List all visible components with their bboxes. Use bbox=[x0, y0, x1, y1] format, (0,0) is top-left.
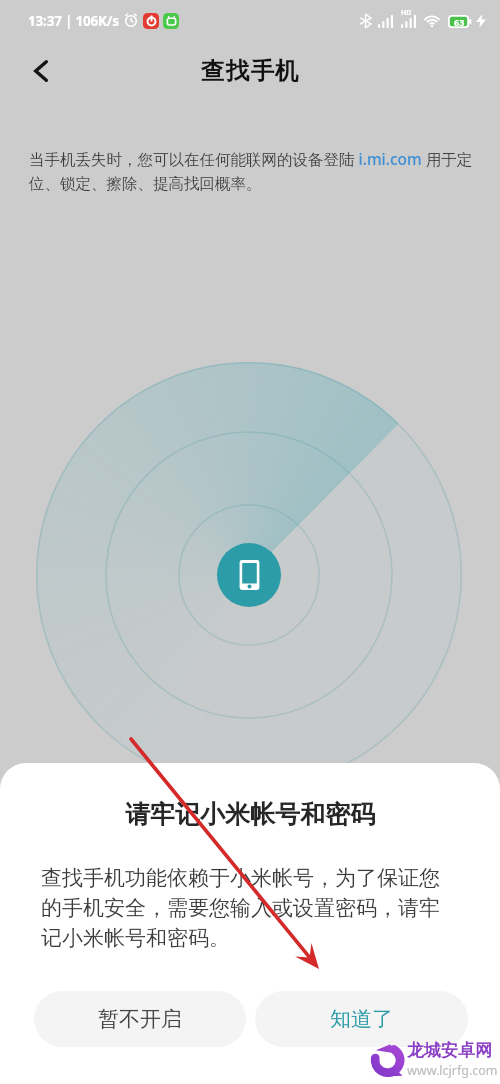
staticText: 当手机丢失时，您可以在任何能联网的设备登陆 i.mi.com 用于定位、锁定、擦… bbox=[29, 148, 482, 194]
button[interactable]: 知道了 bbox=[255, 991, 468, 1047]
staticText: 查找手机功能依赖于小米帐号，为了保证您的手机安全，需要您输入或设置密码，请牢记小… bbox=[41, 865, 450, 951]
staticText: HD bbox=[401, 8, 412, 18]
staticText: 63 bbox=[454, 16, 465, 28]
staticText: 知道了 bbox=[330, 1006, 393, 1032]
button[interactable]: Back bbox=[18, 48, 64, 94]
staticText: 龙城安卓网 bbox=[407, 1040, 492, 1061]
staticText: 查找手机 bbox=[201, 56, 300, 86]
staticText: 请牢记小米帐号和密码 bbox=[0, 799, 500, 830]
staticText: www.lcjrfg.com bbox=[407, 1062, 498, 1079]
staticText: 暂不开启 bbox=[98, 1006, 182, 1032]
staticText: 13:37 | 106K/s bbox=[28, 12, 119, 30]
button[interactable]: 暂不开启 bbox=[34, 991, 246, 1047]
